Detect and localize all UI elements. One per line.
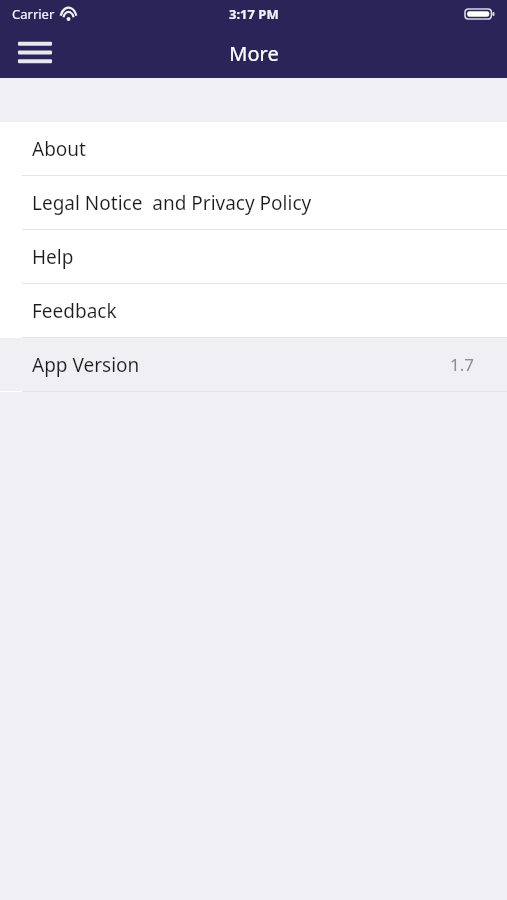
- button[interactable]: Feedback: [0, 284, 507, 337]
- button[interactable]: Open navigation menu: [12, 32, 58, 74]
- button[interactable]: Help: [0, 230, 507, 283]
- staticText: Feedback: [32, 298, 117, 324]
- staticText: 3:17 PM: [229, 5, 279, 23]
- staticText: Carrier: [12, 5, 55, 23]
- staticText: More: [229, 40, 279, 67]
- button[interactable]: About: [0, 122, 507, 175]
- staticText: About: [32, 136, 86, 162]
- staticText: Help: [32, 244, 74, 270]
- staticText: 1.7: [450, 353, 475, 376]
- button[interactable]: Legal Notice and Privacy Policy: [0, 176, 507, 229]
- button[interactable]: App Version: [0, 338, 507, 391]
- staticText: App Version: [32, 352, 140, 378]
- staticText: Legal Notice and Privacy Policy: [32, 190, 312, 216]
